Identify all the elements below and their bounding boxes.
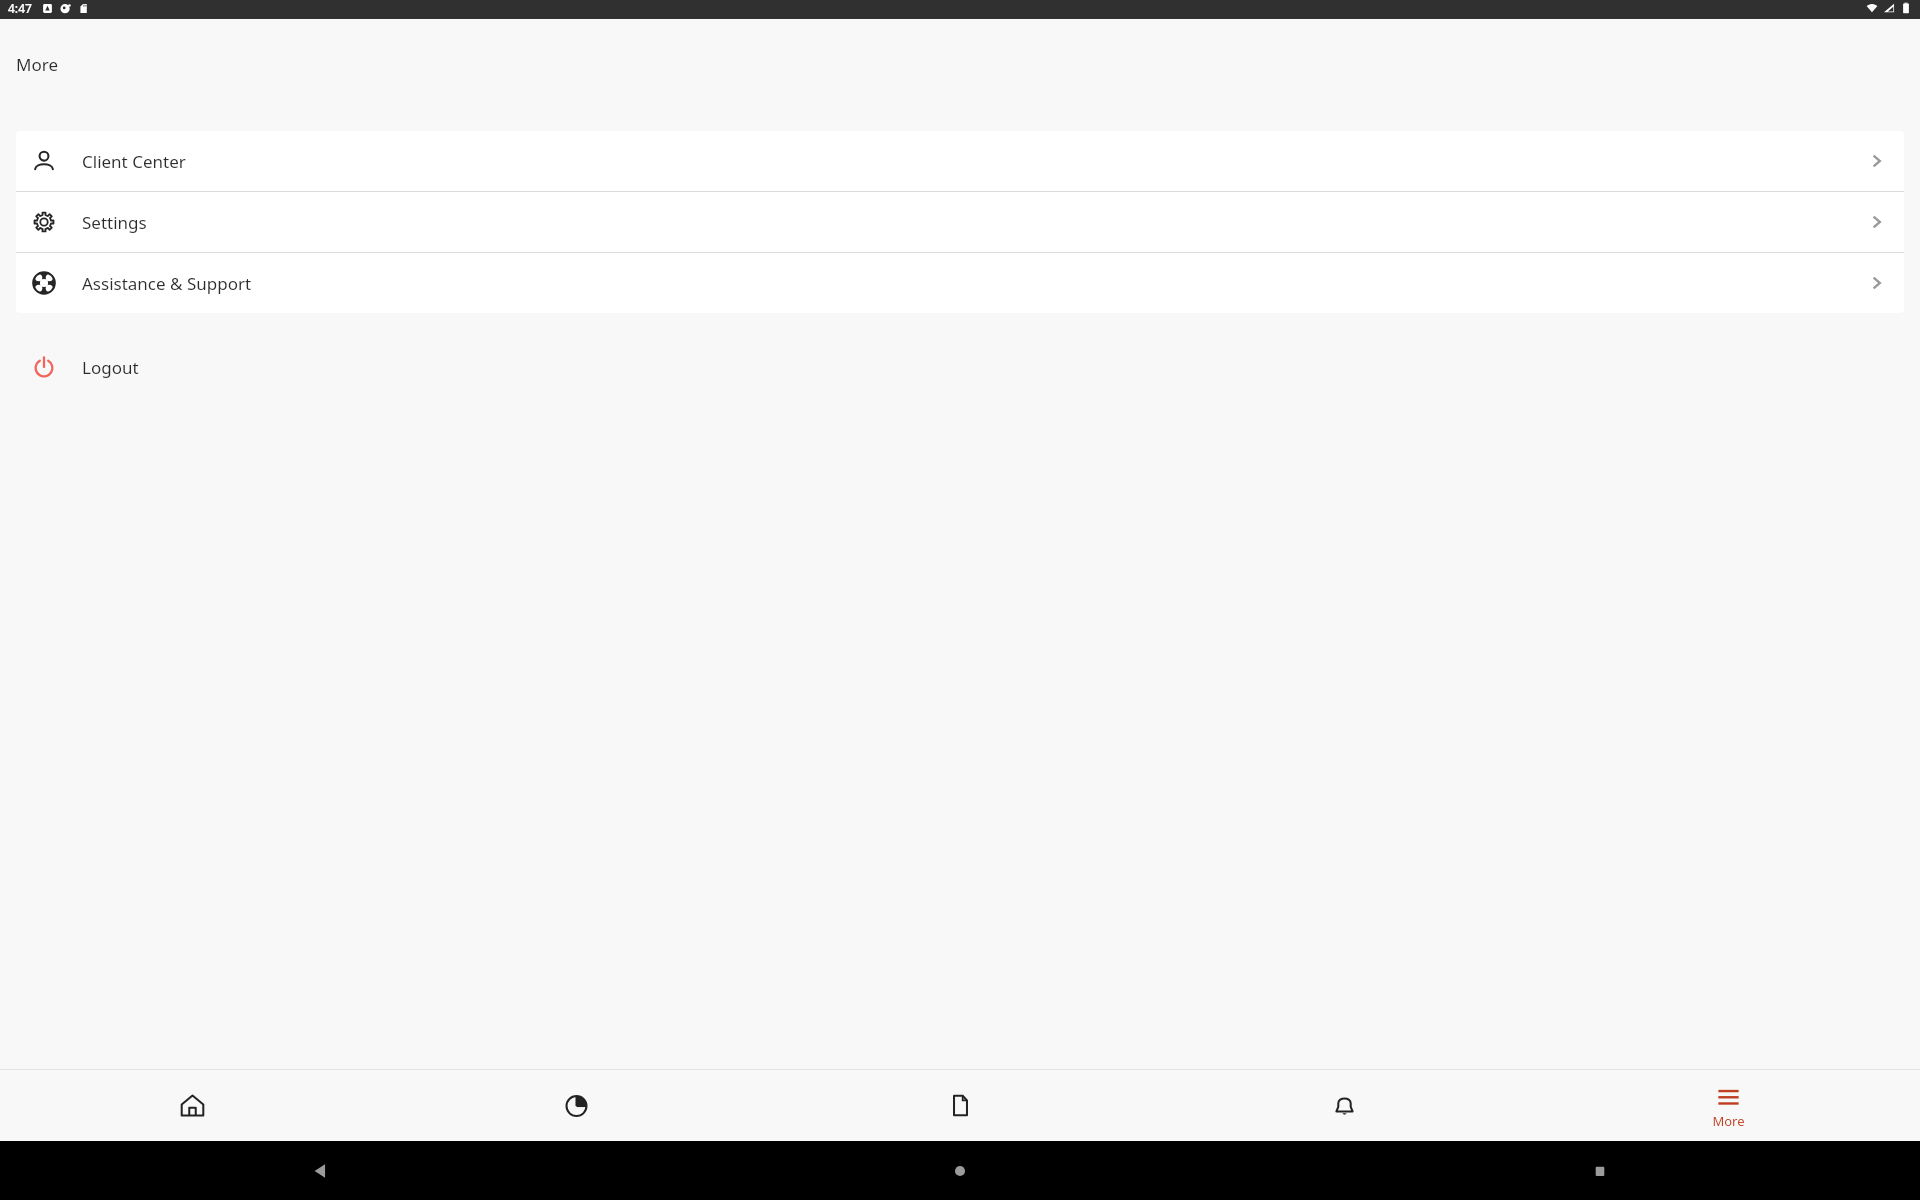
other: Recents xyxy=(1591,1162,1609,1180)
button[interactable]: Reports xyxy=(384,1070,768,1141)
staticText: Assistance & Support xyxy=(82,272,252,295)
staticText: Logout xyxy=(82,356,139,379)
staticText: Client Center xyxy=(82,150,186,173)
button[interactable]: Logout xyxy=(0,339,1920,395)
staticText: 4:47 xyxy=(8,0,32,16)
button[interactable]: More xyxy=(1536,1070,1920,1141)
button[interactable]: Assistance & Support xyxy=(16,253,1904,313)
staticText: More xyxy=(1712,1112,1745,1130)
other: Back xyxy=(311,1162,329,1180)
button[interactable]: Settings xyxy=(16,192,1904,252)
staticText: More xyxy=(16,53,58,76)
staticText: Settings xyxy=(82,211,147,234)
button[interactable]: Client Center xyxy=(16,131,1904,191)
button[interactable]: Documents xyxy=(768,1070,1152,1141)
button[interactable]: Home xyxy=(0,1070,384,1141)
other: Home xyxy=(951,1162,969,1180)
button[interactable]: Notifications xyxy=(1152,1070,1536,1141)
